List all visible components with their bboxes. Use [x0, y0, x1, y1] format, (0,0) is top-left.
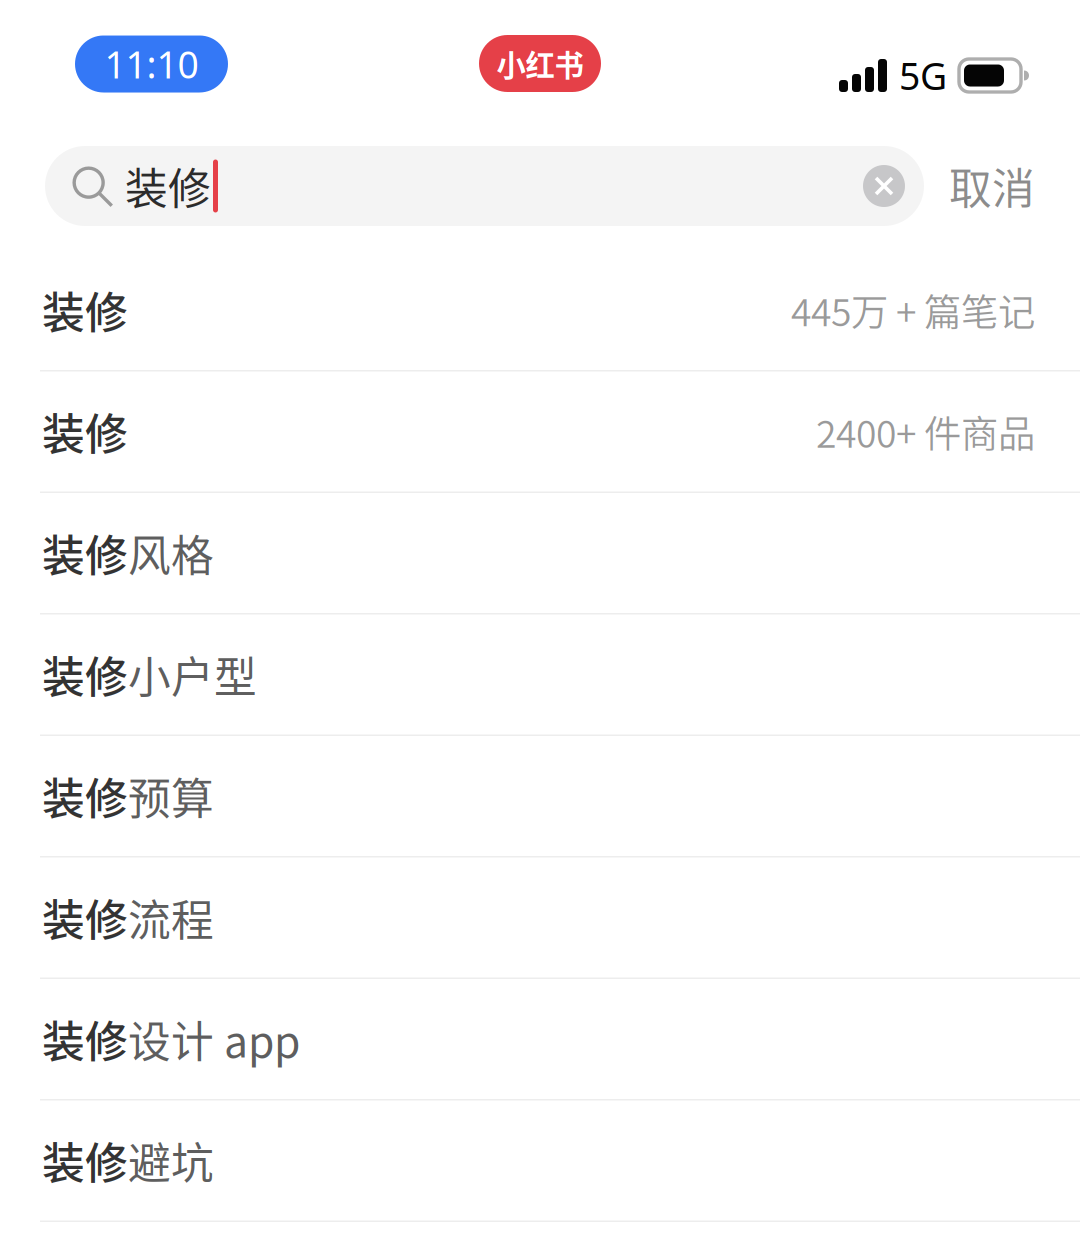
button[interactable]: 装修	[0, 250, 1080, 371]
button[interactable]: 装修	[0, 371, 1080, 493]
staticText: 小户型	[128, 644, 257, 705]
staticText: 装修	[42, 522, 128, 584]
button[interactable]: 装修	[0, 979, 1080, 1100]
staticText: 2400+ 件商品	[816, 404, 1035, 459]
button[interactable]: 装修	[0, 736, 1080, 857]
staticText: 445万 + 篇笔记	[791, 283, 1035, 337]
button[interactable]: 取消	[924, 146, 1035, 226]
staticText: 5G	[899, 50, 947, 101]
staticText: 装修	[42, 1130, 128, 1191]
staticText: 取消	[949, 155, 1035, 217]
staticText: 设计 app	[128, 1008, 300, 1070]
staticText: 装修	[42, 765, 128, 827]
button[interactable]: 装修	[0, 614, 1080, 736]
staticText: 装修	[42, 279, 128, 341]
button[interactable]: 装修	[0, 1100, 1080, 1222]
staticText: 装修	[42, 401, 128, 462]
staticText: 小红书	[496, 42, 583, 85]
staticText: 装修	[42, 887, 128, 948]
button[interactable]: 装修	[0, 857, 1080, 979]
button[interactable]: 装修	[0, 493, 1080, 614]
staticText: 流程	[128, 887, 214, 948]
staticText: 装修	[42, 1008, 128, 1070]
staticText: 11:10	[104, 39, 198, 89]
staticText: 风格	[128, 522, 214, 584]
staticText: 预算	[128, 765, 214, 827]
staticText: 装修	[42, 644, 128, 705]
staticText: 装修	[125, 155, 211, 217]
staticText: 避坑	[128, 1130, 214, 1191]
button[interactable]: Clear search text	[844, 146, 924, 226]
